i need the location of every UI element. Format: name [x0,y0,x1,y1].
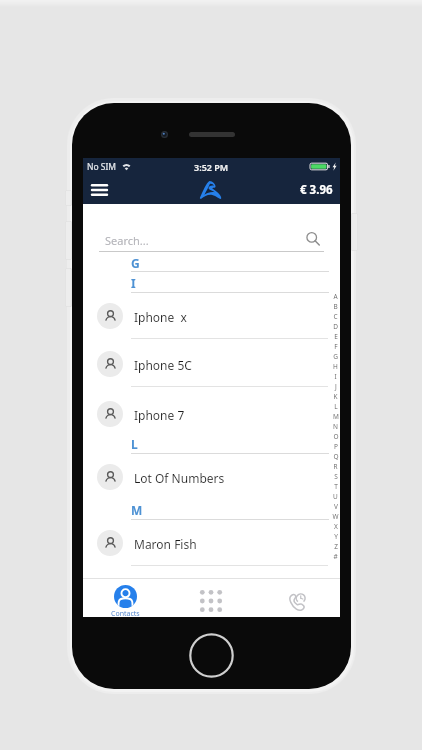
staticText: I [334,372,337,381]
staticText: G [333,352,338,361]
staticText: J [335,382,337,391]
staticText: Y [334,532,338,541]
staticText: X [334,522,338,531]
staticText: No SIM [87,161,117,173]
staticText: Maron Fish [134,536,197,552]
staticText: 3:52 PM [194,161,229,173]
staticText: G [131,255,140,271]
staticText: Z [334,542,338,551]
staticText: O [333,432,339,441]
button[interactable]: Lot Of Numbers [83,452,340,500]
staticText: T [334,482,338,491]
staticText: B [333,302,338,311]
staticText: A [333,292,338,301]
staticText: D [333,322,338,331]
staticText: Contacts [111,609,140,617]
staticText: U [333,492,338,501]
button[interactable]: Maron Fish [83,518,340,566]
staticText: S [334,472,338,481]
staticText: H [333,362,338,371]
staticText: Q [333,452,339,461]
staticText: F [334,342,338,351]
staticText: M [131,502,143,518]
button[interactable]: Iphone 7 [83,389,340,437]
staticText: C [333,312,338,321]
staticText: Iphone 5C [134,357,192,373]
button[interactable]: Recents [254,585,340,617]
staticText: W [332,512,339,521]
button[interactable]: Keypad [168,585,254,617]
staticText: I [131,275,136,291]
button[interactable]: Menu [87,178,111,202]
staticText: E [334,332,338,341]
staticText: R [333,462,338,471]
staticText: N [333,422,338,431]
button[interactable]: Iphone 5C [83,339,340,387]
button[interactable]: Search [305,231,321,247]
staticText: P [334,442,338,451]
button[interactable]: Iphone x [83,291,340,339]
staticText: Iphone 7 [134,407,185,423]
staticText: # [333,552,338,561]
staticText: Iphone x [134,309,187,325]
staticText: L [131,436,138,452]
staticText: V [334,502,338,511]
staticText: L [334,402,338,411]
button[interactable]: Contacts [83,585,168,617]
staticText: K [333,392,338,401]
button[interactable]: € 3.96 [300,182,333,198]
staticText: € 3.96 [300,182,333,198]
staticText: Lot Of Numbers [134,470,225,486]
staticText: Search... [105,233,149,248]
staticText: M [333,412,339,421]
